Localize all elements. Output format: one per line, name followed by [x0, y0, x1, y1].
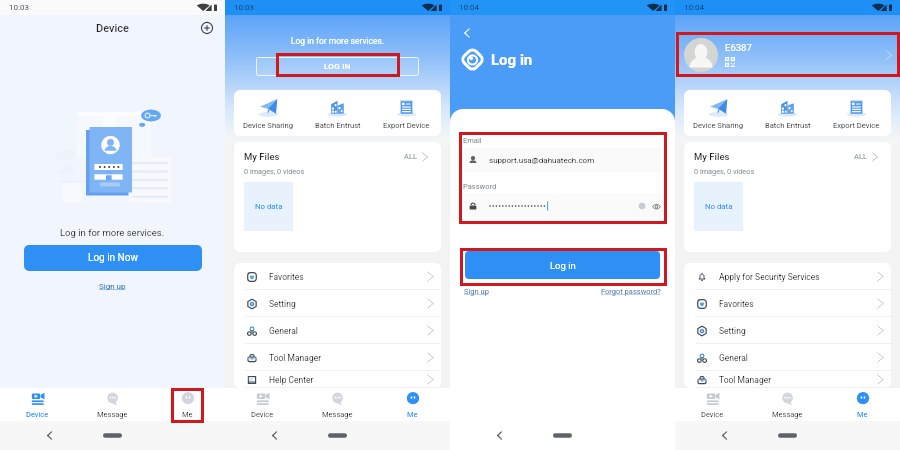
- staticText: Batch Entrust: [315, 121, 361, 130]
- staticText: Device: [701, 410, 724, 419]
- button[interactable]: Sign up: [464, 287, 489, 296]
- staticText: Device: [251, 410, 274, 419]
- button[interactable]: Message: [300, 388, 375, 421]
- button[interactable]: Favorites: [684, 290, 891, 317]
- staticText: Message: [97, 410, 128, 419]
- staticText: 10:04: [459, 3, 479, 12]
- staticText: Setting: [269, 299, 296, 309]
- button[interactable]: Setting: [684, 317, 891, 344]
- button[interactable]: General: [234, 317, 441, 344]
- button[interactable]: Device Sharing: [684, 90, 753, 136]
- staticText: Device Sharing: [693, 121, 744, 130]
- staticText: 0 images, 0 videos: [694, 167, 755, 176]
- button[interactable]: Device: [225, 388, 300, 421]
- button[interactable]: Tool Manager: [684, 371, 891, 388]
- button[interactable]: Back: [459, 25, 475, 41]
- staticText: ALL: [404, 152, 417, 161]
- staticText: LOG IN: [324, 62, 351, 71]
- staticText: Help Center: [269, 375, 314, 385]
- staticText: Email: [463, 136, 482, 145]
- staticText: Tool Manager: [269, 353, 322, 363]
- staticText: 10:03: [9, 3, 29, 12]
- button[interactable]: LOG IN: [256, 57, 419, 76]
- staticText: 10:03: [234, 3, 254, 12]
- staticText: Device: [96, 22, 129, 35]
- staticText: E6387: [725, 42, 752, 53]
- button[interactable]: Setting: [234, 290, 441, 317]
- staticText: Log in for more services.: [225, 36, 450, 46]
- button[interactable]: Log in: [465, 251, 660, 279]
- button[interactable]: Device Sharing: [234, 90, 303, 136]
- staticText: Log in: [550, 260, 576, 271]
- staticText: My Files: [244, 151, 280, 162]
- button[interactable]: Help Center: [234, 371, 441, 388]
- button[interactable]: Batch Entrust: [753, 90, 822, 136]
- staticText: Log in: [491, 51, 533, 69]
- button[interactable]: Sign up: [99, 282, 126, 291]
- staticText: 0 images, 0 videos: [244, 167, 305, 176]
- staticText: support.usa@dahuatech.com: [489, 156, 595, 165]
- staticText: Favorites: [269, 272, 304, 282]
- button[interactable]: Device: [675, 388, 750, 421]
- staticText: Message: [772, 410, 803, 419]
- staticText: Batch Entrust: [765, 121, 811, 130]
- button[interactable]: E6387: [675, 32, 900, 77]
- staticText: Password: [463, 182, 497, 191]
- button[interactable]: Me: [150, 388, 225, 421]
- button[interactable]: Log in Now: [24, 245, 202, 271]
- button[interactable]: Export Device: [372, 90, 441, 136]
- staticText: Apply for Security Services: [719, 272, 820, 282]
- staticText: Sign up: [99, 282, 126, 291]
- button[interactable]: Batch Entrust: [303, 90, 372, 136]
- staticText: No data: [705, 202, 733, 211]
- staticText: Me: [857, 410, 868, 419]
- button[interactable]: Device: [0, 388, 75, 421]
- staticText: Setting: [719, 326, 746, 336]
- staticText: Me: [182, 410, 193, 419]
- button[interactable]: Message: [750, 388, 825, 421]
- staticText: General: [269, 326, 298, 336]
- staticText: ALL: [854, 152, 867, 161]
- button[interactable]: Me: [825, 388, 900, 421]
- button[interactable]: Tool Manager: [234, 344, 441, 371]
- staticText: General: [719, 353, 748, 363]
- staticText: No data: [255, 202, 283, 211]
- staticText: Device: [26, 410, 49, 419]
- staticText: Message: [322, 410, 353, 419]
- button[interactable]: ALL: [402, 150, 431, 163]
- button[interactable]: Forgot password?: [601, 287, 661, 296]
- staticText: Export Device: [383, 121, 430, 130]
- button[interactable]: Export Device: [822, 90, 891, 136]
- button[interactable]: Favorites: [234, 263, 441, 290]
- staticText: Device Sharing: [243, 121, 294, 130]
- button[interactable]: Message: [75, 388, 150, 421]
- staticText: Me: [407, 410, 418, 419]
- staticText: Log in Now: [88, 252, 138, 264]
- button[interactable]: Me: [375, 388, 450, 421]
- staticText: Favorites: [719, 299, 754, 309]
- staticText: My Files: [694, 151, 730, 162]
- staticText: Export Device: [833, 121, 880, 130]
- button[interactable]: Add device: [199, 20, 215, 36]
- button[interactable]: Apply for Security Services: [684, 263, 891, 290]
- staticText: Tool Manager: [719, 375, 772, 385]
- staticText: Log in for more services.: [60, 227, 165, 238]
- button[interactable]: ALL: [852, 150, 881, 163]
- staticText: Forgot password?: [601, 287, 661, 296]
- staticText: 10:04: [684, 3, 704, 12]
- button[interactable]: General: [684, 344, 891, 371]
- staticText: Sign up: [464, 287, 489, 296]
